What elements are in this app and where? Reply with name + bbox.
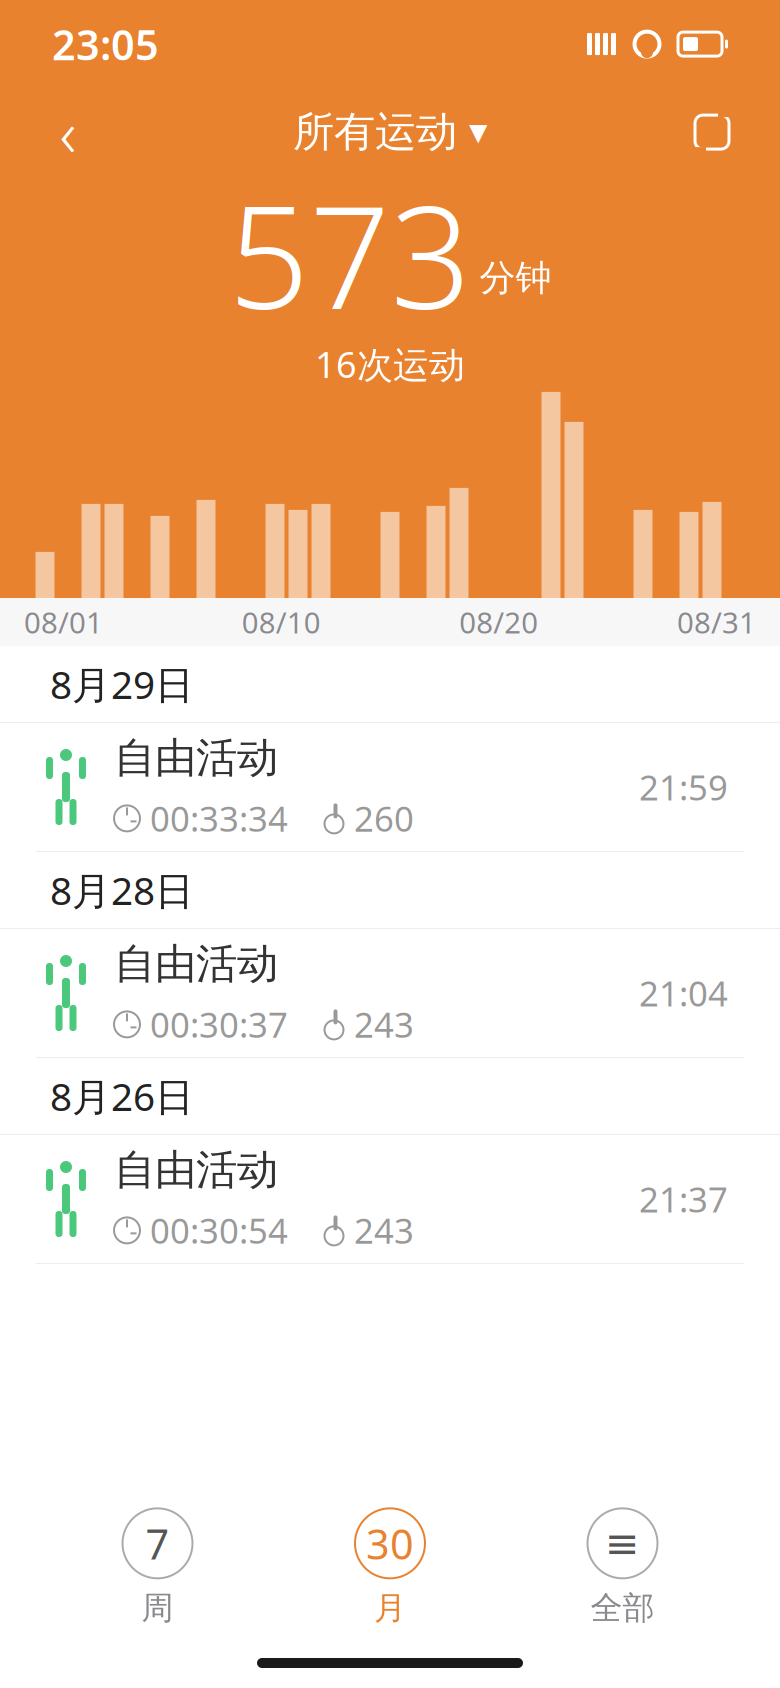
staticText: 自由活动 [114,1145,278,1195]
staticText: 21:04 [639,970,728,1016]
staticText: ≡ [605,1520,640,1567]
staticText: ‹ [59,90,76,175]
staticText: ▼ [469,118,487,146]
staticText: 08/10 [242,602,321,641]
staticText: 573 [228,160,471,348]
staticText: 08/31 [677,602,756,641]
button[interactable]: 返回 [26,90,110,174]
staticText: 243 [354,1001,414,1047]
staticText: 分钟 [479,256,551,300]
button[interactable]: 自由活动 [0,929,780,1057]
button[interactable]: 自由活动 [0,1135,780,1263]
staticText: 00:33:34 [150,795,288,841]
staticText: 自由活动 [114,939,278,989]
staticText: 21:59 [639,764,728,810]
staticText: 16次运动 [315,340,465,388]
staticText: 8月29日 [50,658,194,710]
staticText: 30 [366,1516,414,1571]
staticText: 243 [354,1207,414,1253]
button[interactable]: 所有运动 [293,90,487,174]
staticText: 23:05 [52,17,159,72]
staticText: 8月28日 [50,864,194,916]
staticText: 00:30:54 [150,1207,288,1253]
staticText: 7 [145,1516,169,1571]
staticText: 21:37 [639,1176,728,1222]
button[interactable]: 30 [315,1503,465,1633]
button[interactable]: ≡ [547,1503,697,1633]
staticText: 260 [354,795,414,841]
staticText: 月 [374,1588,406,1628]
staticText: 周 [141,1588,173,1628]
button[interactable]: 切换运动类型 [670,90,754,174]
button[interactable]: 自由活动 [0,723,780,851]
button[interactable]: 7 [82,1503,232,1633]
staticText: 8月26日 [50,1070,194,1122]
staticText: 00:30:37 [150,1001,288,1047]
staticText: 08/01 [24,602,103,641]
staticText: 08/20 [459,602,538,641]
staticText: 全部 [590,1588,654,1628]
staticText: 所有运动 [293,107,457,157]
staticText: 自由活动 [114,733,278,783]
